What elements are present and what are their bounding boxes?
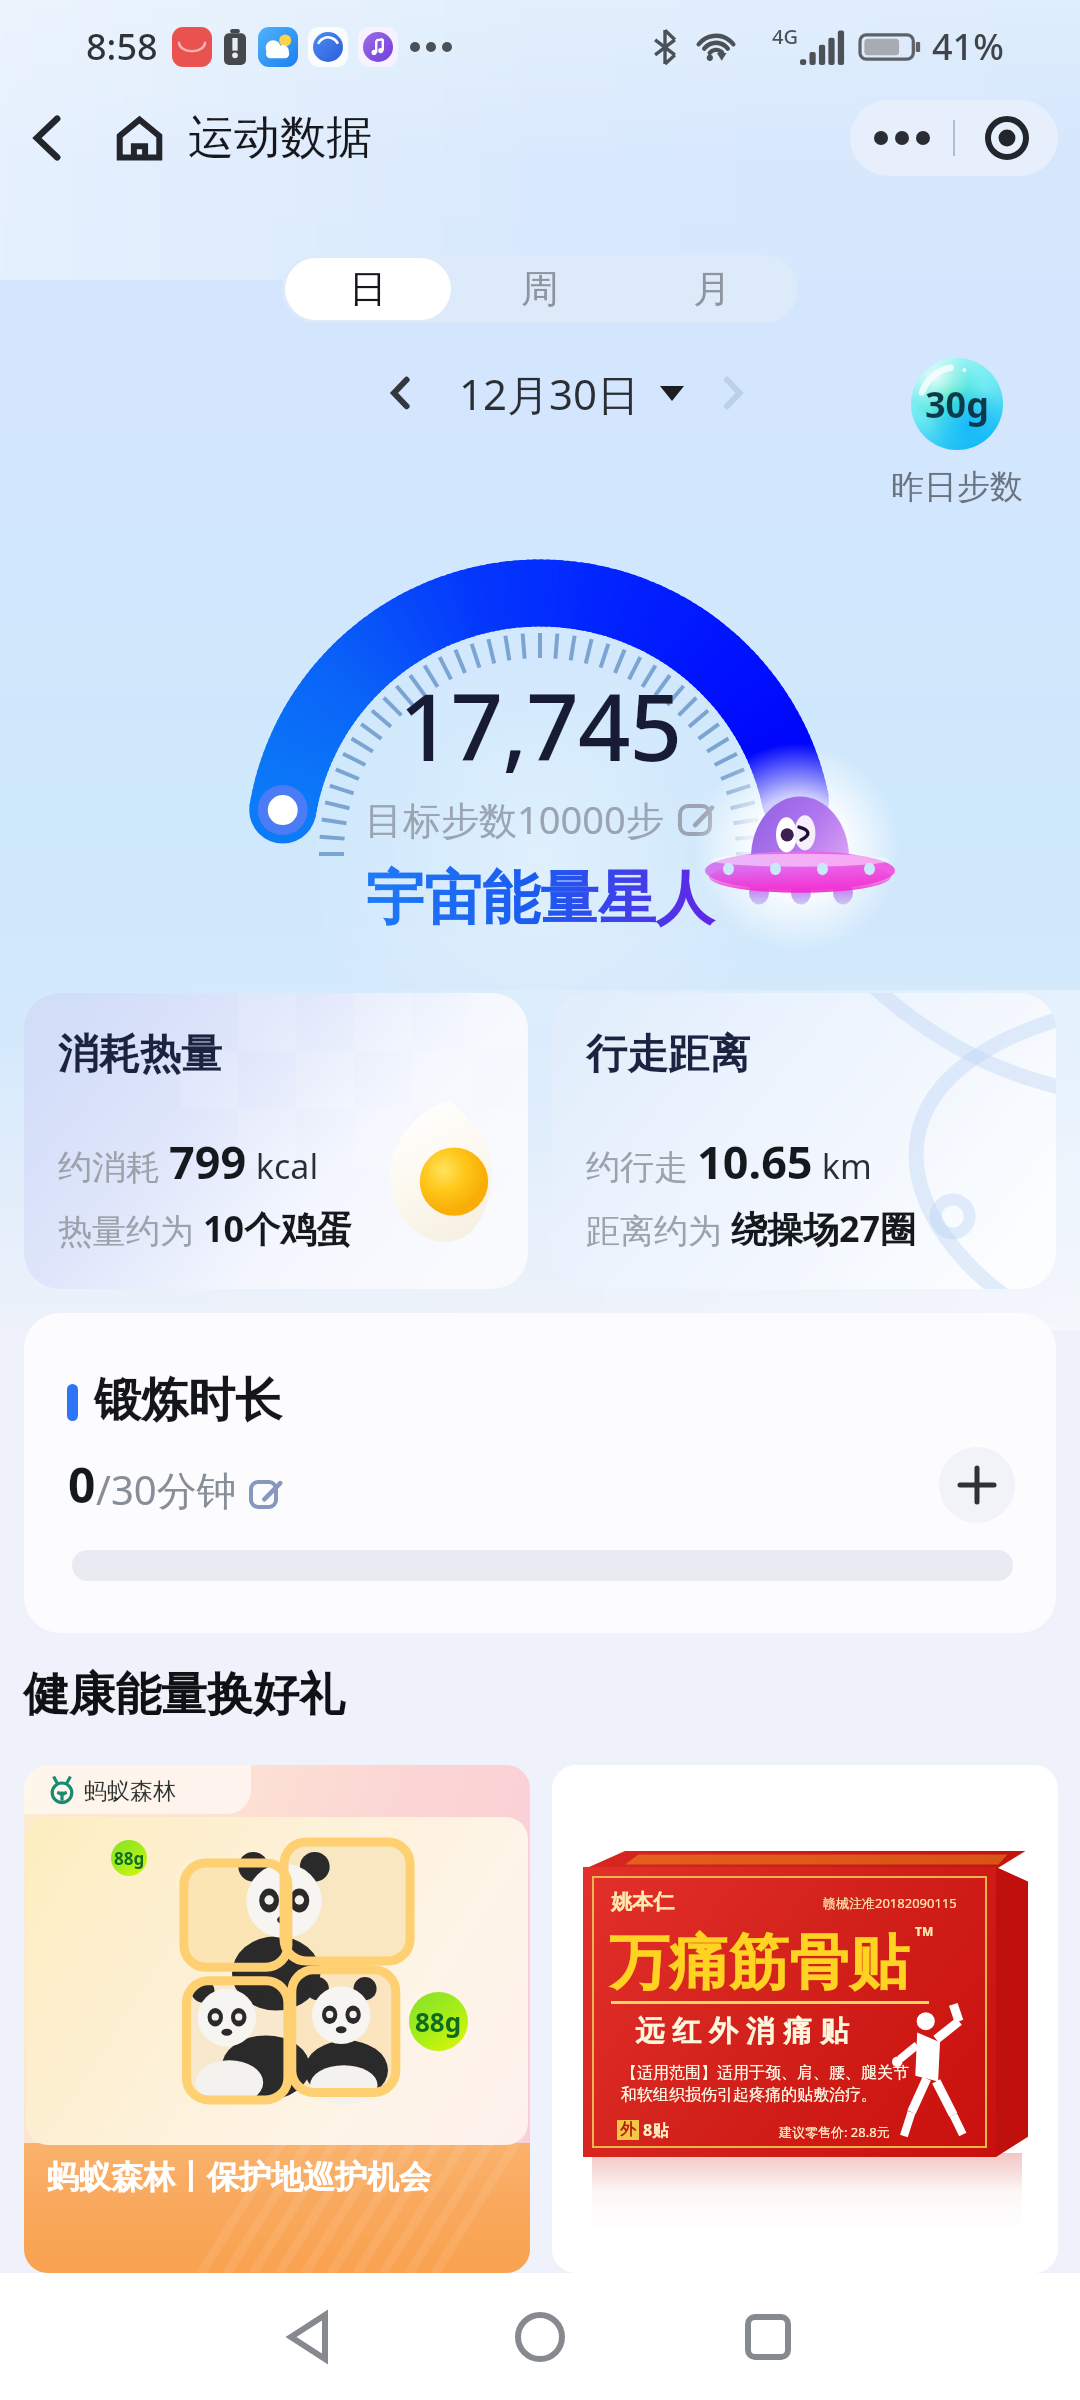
- staticText: 行走距离: [586, 1029, 750, 1081]
- staticText: 799: [169, 1131, 247, 1192]
- staticText: 30g: [925, 380, 989, 429]
- staticText: 88g: [415, 2004, 462, 2039]
- staticText: 月: [693, 265, 731, 313]
- staticText: 12月30日: [459, 365, 640, 422]
- staticText: 外: [620, 2120, 636, 2140]
- button[interactable]: Add exercise: [939, 1447, 1015, 1523]
- button[interactable]: 30g: [862, 358, 1052, 508]
- staticText: 运动数据: [188, 109, 372, 167]
- button[interactable]: 蚂蚁森林: [24, 1765, 530, 2273]
- button[interactable]: Back: [267, 2295, 351, 2379]
- staticText: 41%: [932, 22, 1004, 71]
- button[interactable]: Home: [498, 2295, 582, 2379]
- button[interactable]: Next day: [704, 364, 762, 422]
- staticText: TM: [915, 1923, 934, 1939]
- staticText: 日: [349, 265, 387, 313]
- button[interactable]: 周: [454, 255, 626, 323]
- button[interactable]: Recent apps: [726, 2295, 810, 2379]
- staticText: 10个鸡蛋: [203, 1204, 353, 1253]
- staticText: 万痛筋骨贴: [609, 1925, 909, 2001]
- staticText: 8贴: [643, 2119, 669, 2141]
- button[interactable]: Previous day: [371, 364, 429, 422]
- staticText: 17,745: [399, 663, 682, 788]
- button[interactable]: 消耗热量: [24, 993, 528, 1289]
- staticText: 4G: [772, 23, 798, 50]
- staticText: 蚂蚁森林丨保护地巡护机会: [47, 2157, 431, 2197]
- staticText: 10.65: [697, 1131, 813, 1192]
- staticText: 宇宙能量星人: [366, 862, 714, 935]
- staticText: 约行走: [586, 1143, 697, 1189]
- button[interactable]: 日: [285, 258, 451, 320]
- staticText: 【适用范围】适用于颈、肩、腰、腿关节: [621, 2063, 909, 2083]
- staticText: 约消耗: [58, 1143, 169, 1189]
- staticText: 绕操场27圈: [731, 1204, 917, 1253]
- staticText: 88g: [114, 1847, 145, 1870]
- button[interactable]: Home: [96, 95, 182, 181]
- staticText: 距离约为: [586, 1207, 731, 1253]
- staticText: 昨日步数: [891, 466, 1023, 508]
- button[interactable]: Close: [955, 100, 1058, 176]
- staticText: 消耗热量: [58, 1029, 222, 1081]
- staticText: 目标步数10000步: [365, 793, 664, 845]
- button[interactable]: 锻炼时长: [24, 1313, 1056, 1633]
- staticText: 赣械注准20182090115: [823, 1894, 957, 1912]
- staticText: /30分钟: [96, 1462, 237, 1517]
- staticText: 锻炼时长: [94, 1371, 282, 1430]
- staticText: 建议零售价: 28.8元: [779, 2123, 890, 2141]
- button[interactable]: 月: [626, 255, 798, 323]
- staticText: km: [813, 1143, 872, 1189]
- button[interactable]: 姚本仁: [552, 1765, 1058, 2273]
- staticText: 蚂蚁森林: [84, 1777, 176, 1806]
- staticText: 8:58: [86, 22, 158, 71]
- staticText: 和软组织损伤引起疼痛的贴敷治疗。: [621, 2085, 877, 2105]
- button[interactable]: Back: [0, 92, 96, 184]
- staticText: 热量约为: [58, 1207, 203, 1253]
- staticText: 姚本仁: [611, 1889, 674, 1915]
- button[interactable]: 行走距离: [552, 993, 1056, 1289]
- staticText: kcal: [247, 1143, 319, 1189]
- staticText: 健康能量换好礼: [23, 1666, 345, 1724]
- staticText: 远红外消痛贴: [631, 2013, 853, 2050]
- button[interactable]: More options: [850, 100, 953, 176]
- staticText: 0: [68, 1452, 96, 1517]
- staticText: 周: [521, 265, 559, 313]
